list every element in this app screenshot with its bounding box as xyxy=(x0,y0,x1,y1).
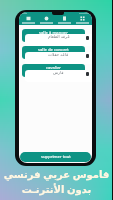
button[interactable]: supprimer tout xyxy=(20,152,91,162)
staticText: فارس xyxy=(53,70,64,75)
staticText: بدون الأنترنـت xyxy=(0,182,113,196)
button[interactable]: Play pronunciation xyxy=(86,72,89,76)
button[interactable]: cavalier xyxy=(22,64,85,77)
button[interactable]: Tab 1 xyxy=(20,16,37,24)
button[interactable]: Tab 4 xyxy=(74,16,91,24)
button[interactable]: salle de concert xyxy=(22,46,85,59)
staticText: salle de concert xyxy=(38,47,69,53)
staticText: قاعة حفلات xyxy=(48,52,69,58)
button[interactable]: Tab 2 xyxy=(38,16,55,24)
staticText: supprimer tout xyxy=(41,154,71,160)
button[interactable]: Play pronunciation xyxy=(86,54,89,58)
staticText: cavalier xyxy=(46,65,62,71)
button[interactable]: salle à manger xyxy=(22,29,85,42)
staticText: غرفة الطعام xyxy=(48,34,70,40)
staticText: salle à manger xyxy=(39,30,68,36)
staticText: قاموس عربي فرنسي xyxy=(0,167,113,181)
button[interactable]: Tab 3 xyxy=(56,16,73,24)
button[interactable]: Play pronunciation xyxy=(86,36,89,40)
